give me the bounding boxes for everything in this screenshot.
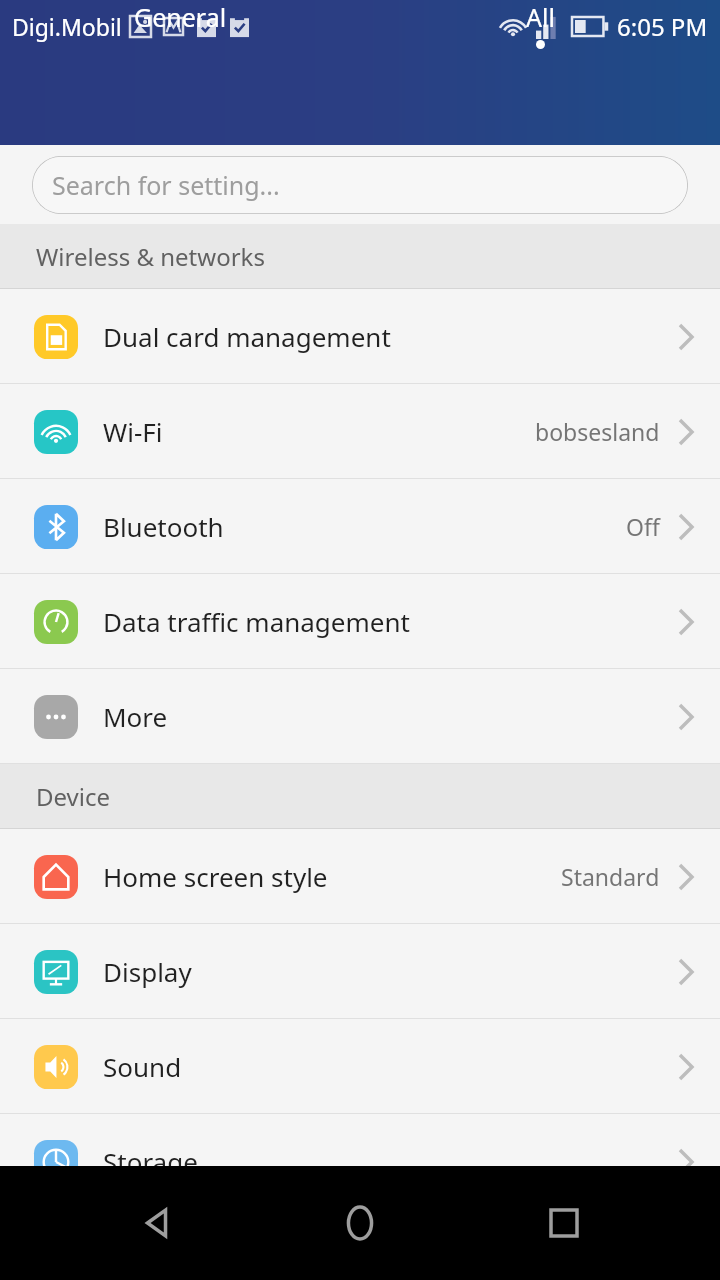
staticText: Display [103,954,192,989]
staticText: bobsesland [535,416,660,447]
staticText: Standard [561,861,660,892]
staticText: Device [36,780,111,813]
button[interactable]: All [360,0,720,145]
staticText: Wireless & networks [36,240,265,273]
button[interactable]: Data traffic management [0,574,720,669]
staticText: Digi.Mobil [12,11,122,42]
staticText: General [134,0,227,34]
staticText: Bluetooth [103,509,224,544]
button[interactable]: Bluetooth [0,479,720,574]
button[interactable]: Home screen style [0,829,720,924]
staticText: Search for setting... [52,168,280,202]
button[interactable]: Wi-Fi [0,384,720,479]
button[interactable]: Search for setting... [32,156,688,214]
button[interactable]: Dual card management [0,289,720,384]
button[interactable]: Sound [0,1019,720,1114]
staticText: Storage [103,1144,198,1179]
staticText: Sound [103,1049,182,1084]
staticText: 6:05 PM [617,10,708,43]
button[interactable]: More [0,669,720,764]
staticText: Dual card management [103,319,391,354]
staticText: All [526,0,555,34]
button[interactable]: Back [108,1175,204,1271]
button[interactable]: General [0,0,360,145]
staticText: Wi-Fi [103,414,163,449]
staticText: Home screen style [103,859,328,894]
staticText: More [103,699,168,734]
button[interactable]: Storage [0,1114,720,1209]
button[interactable]: Display [0,924,720,1019]
button[interactable]: Home [312,1175,408,1271]
staticText: Data traffic management [103,604,410,639]
staticText: Off [626,511,660,542]
button[interactable]: Recent apps [516,1175,612,1271]
